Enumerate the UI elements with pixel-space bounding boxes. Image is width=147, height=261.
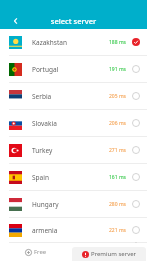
staticText: Turkey [32,146,53,155]
staticText: 205 ms [109,93,126,100]
button[interactable]: Slovakia [0,110,147,137]
staticText: Hungary [32,200,59,209]
staticText: 188 ms [109,39,126,46]
staticText: Premium server [91,250,137,258]
staticText: 271 ms [109,147,126,154]
button[interactable]: Premium server [72,247,146,261]
staticText: Portugal [32,65,59,74]
button[interactable]: Free [0,243,72,261]
staticText: Slovakia [32,119,57,128]
staticText: select server [0,16,147,26]
button[interactable]: Hungary [0,191,147,218]
button[interactable]: armenia [0,218,147,243]
staticText: Free [34,248,47,256]
staticText: Kazakhstan [32,38,67,47]
button[interactable]: Turkey [0,137,147,164]
button[interactable]: Back [9,14,23,28]
button[interactable]: Serbia [0,83,147,110]
staticText: 191 ms [109,66,126,73]
staticText: 206 ms [109,120,126,127]
staticText: Serbia [32,92,52,101]
staticText: armenia [32,226,58,235]
staticText: 280 ms [109,201,126,208]
button[interactable]: Spain [0,164,147,191]
staticText: Spain [32,173,49,182]
staticText: 161 ms [109,174,126,181]
staticText: 221 ms [109,227,126,234]
button[interactable]: Portugal [0,56,147,83]
button[interactable]: Kazakhstan [0,29,147,56]
